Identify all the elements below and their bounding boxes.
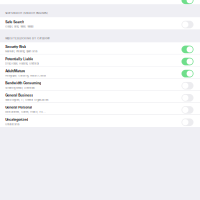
button[interactable]: Bandwidth Consuming — [0, 79, 200, 91]
staticText: Uncategorized — [5, 118, 28, 122]
staticText: Security Risk — [5, 45, 26, 49]
staticText: Safe Search — [5, 20, 24, 24]
staticText: Unrated Sites — [5, 123, 19, 126]
staticText: General Business — [5, 93, 33, 97]
button[interactable]: Uncategorized — [0, 115, 200, 127]
button[interactable]: Potentially Liable — [0, 54, 200, 66]
staticText: Bandwidth Consuming — [5, 81, 41, 85]
staticText: Potentially Liable — [5, 57, 33, 61]
staticText: Malware, Phishing, Spam sites — [5, 50, 37, 53]
button[interactable]: Adult/Mature — [0, 66, 200, 79]
button[interactable]: General Business — [0, 91, 200, 103]
staticText: Streaming Media, Download — [5, 86, 34, 89]
button[interactable]: Safe Search — [0, 17, 200, 29]
button[interactable]: General Personal — [0, 103, 200, 115]
staticText: Entertainment, Games, Health, Ad ... — [5, 111, 46, 113]
button[interactable]: Security Risk — [0, 42, 200, 54]
staticText: SAFE SEARCH (SEARCH ENGINES) — [5, 12, 48, 15]
staticText: Drug Abuse, Hacking, Unethical — [5, 62, 39, 65]
staticText: Google, Bing, Yahoo, Yandex — [5, 25, 33, 28]
staticText: Adult/Mature — [5, 69, 25, 73]
staticText: General Personal — [5, 105, 32, 109]
staticText: Search Engines, IT, General Organization… — [5, 98, 48, 101]
staticText: WEBSITE BLOCKING BY CATEGORY — [5, 37, 50, 40]
staticText: Pornography, Gambling, Mature Content — [5, 74, 46, 77]
